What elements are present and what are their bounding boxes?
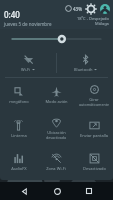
button[interactable]: Brightness	[0, 29, 113, 49]
button[interactable]: 0:40	[4, 9, 52, 27]
staticText: Enviar pantalla	[80, 133, 108, 138]
staticText: Linterna	[11, 133, 27, 138]
staticText: Wi-Fi	[21, 67, 31, 72]
staticText: Ubicación	[47, 130, 66, 135]
button[interactable]: Desactivado	[75, 145, 113, 178]
staticText: 43%	[73, 6, 82, 12]
staticText: Girar	[89, 97, 99, 102]
staticText: 0:40	[4, 9, 20, 20]
button[interactable]: Ubicación	[37, 112, 75, 145]
staticText: megáfono	[9, 99, 29, 104]
button[interactable]: Settings	[86, 4, 96, 14]
staticText: jueves 5 de noviembre	[4, 21, 52, 27]
button[interactable]: 18ºC - Despejado	[77, 16, 109, 26]
button[interactable]: Enviar pantalla	[75, 112, 113, 145]
button[interactable]: Home	[48, 182, 66, 200]
button[interactable]: Recent apps	[80, 182, 98, 200]
staticText: Málaga	[95, 21, 109, 26]
staticText: Modo avión	[45, 99, 68, 104]
staticText: 18ºC - Despejado	[77, 16, 109, 21]
button[interactable]: Modo avión	[37, 78, 75, 112]
button[interactable]: AudioFX	[0, 145, 37, 178]
button[interactable]: Girar	[75, 78, 113, 112]
staticText: AudioFX	[11, 166, 27, 171]
button[interactable]: megáfono	[0, 78, 37, 112]
button[interactable]: Back	[15, 182, 33, 200]
button[interactable]: Bluetooth	[57, 49, 113, 77]
staticText: Bluetooth	[74, 67, 93, 72]
staticText: Desactivado	[83, 166, 106, 171]
button[interactable]: Linterna	[0, 112, 37, 145]
button[interactable]: Wi-Fi	[0, 49, 56, 77]
other: Battery	[65, 5, 72, 12]
staticText: Zona Wi-Fi	[46, 166, 66, 171]
staticText: automáticamente	[79, 102, 109, 107]
staticText: desactivada	[46, 135, 66, 140]
button[interactable]: User account	[99, 3, 110, 14]
button[interactable]: Zona Wi-Fi	[37, 145, 75, 178]
